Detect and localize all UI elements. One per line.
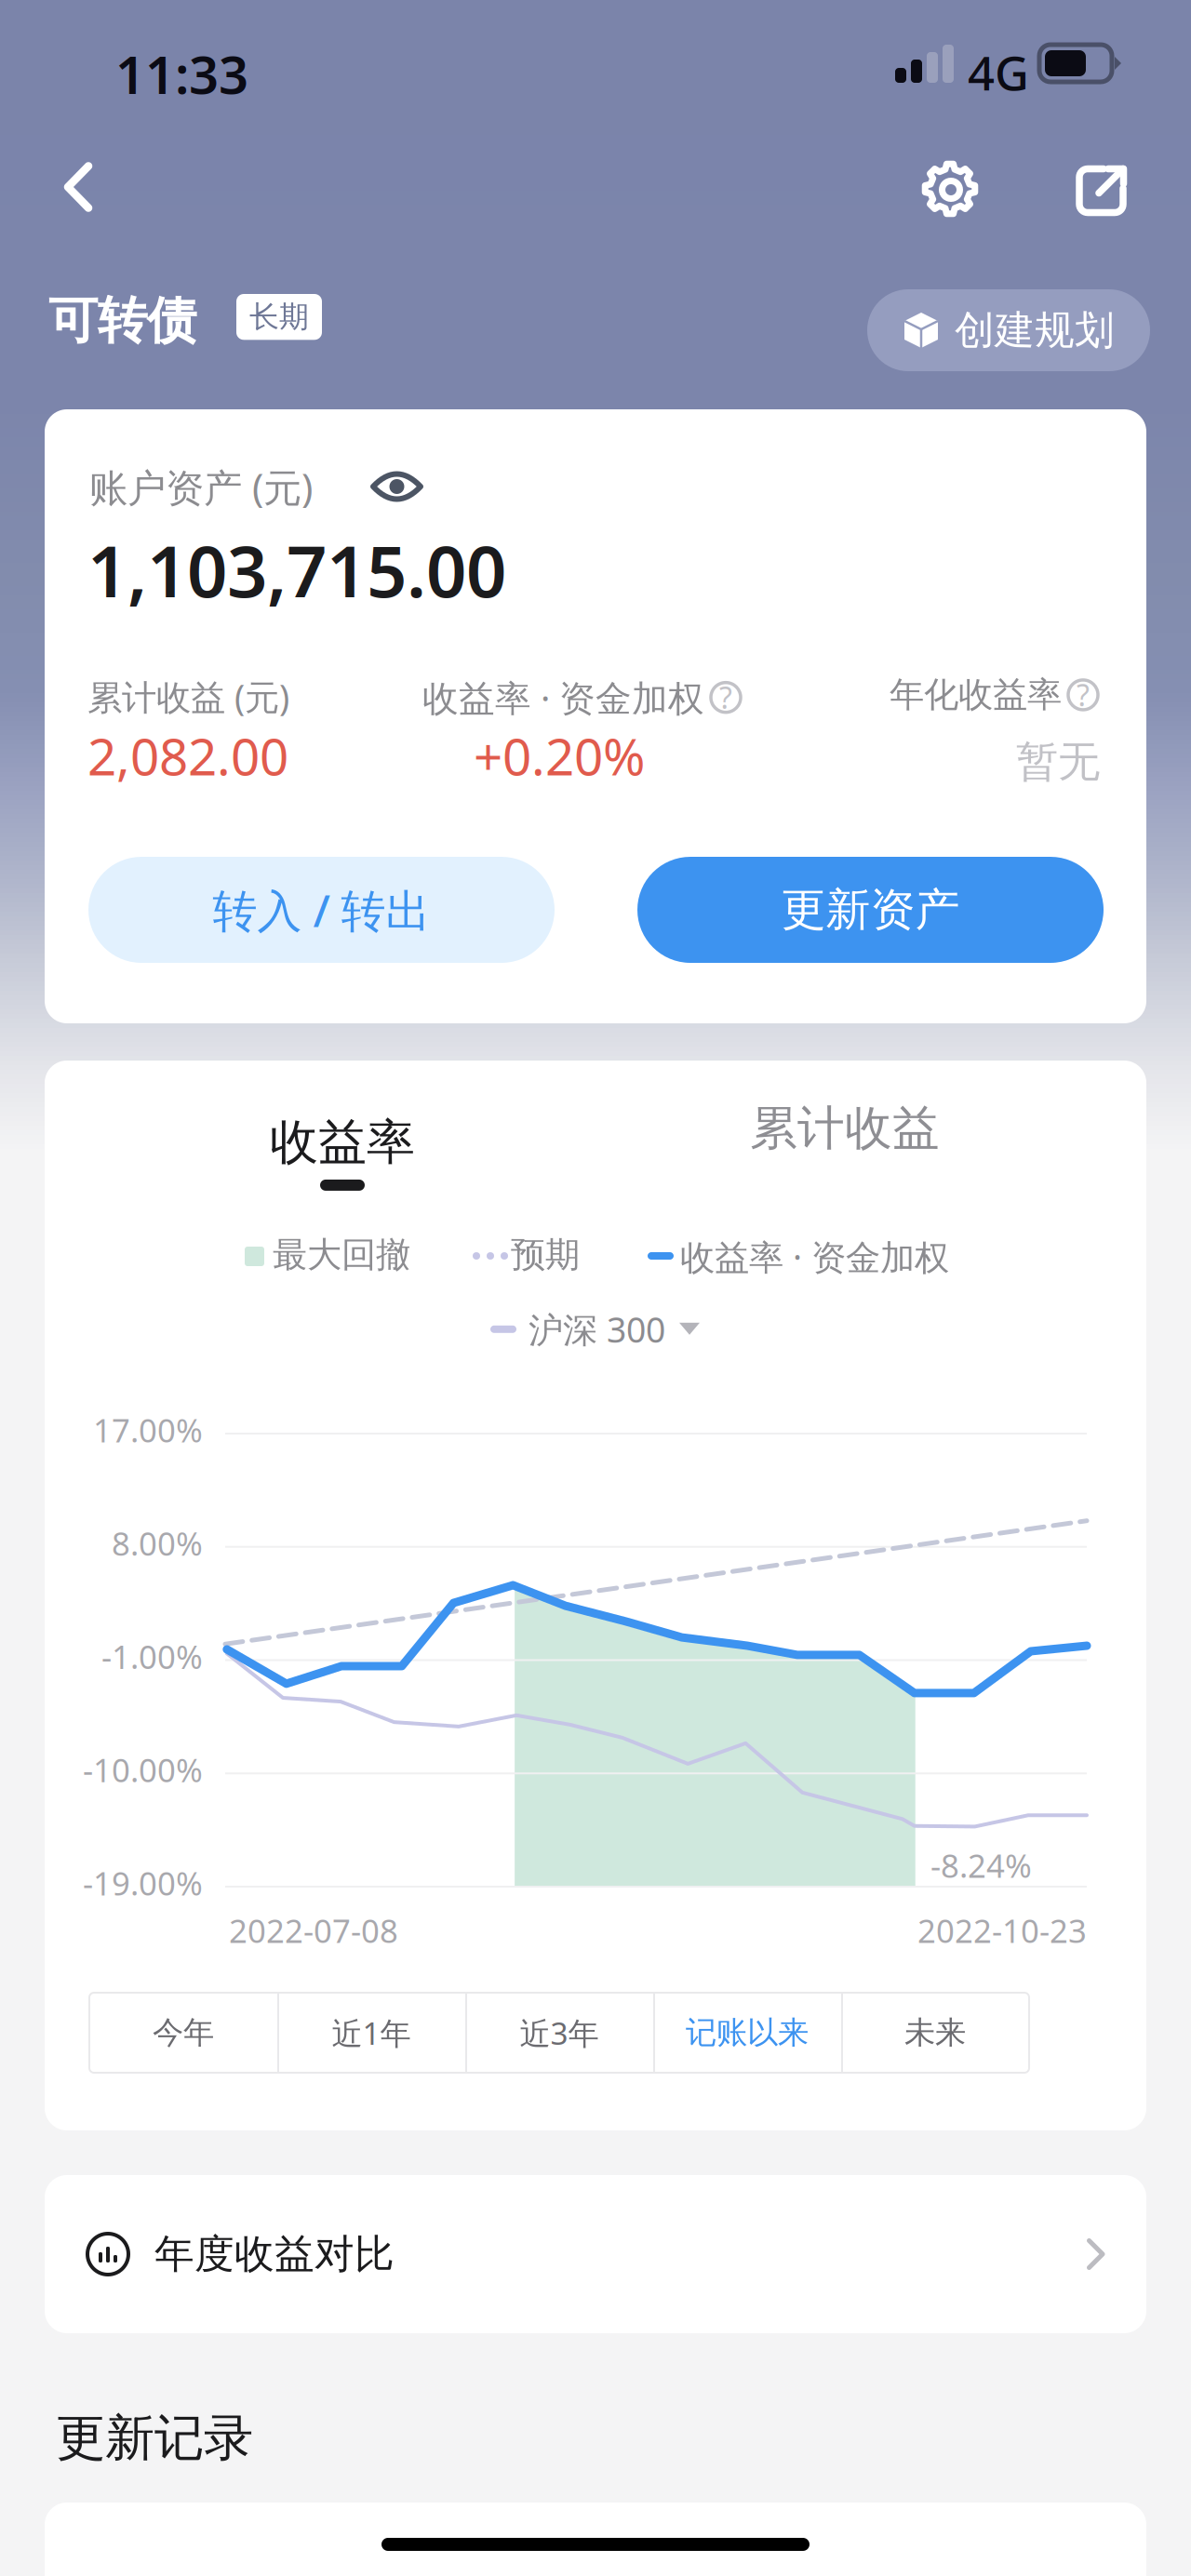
staticText: 2022-07-08 <box>229 1909 398 1952</box>
staticText: 未来 <box>904 2014 966 2052</box>
button[interactable]: 收益率 <box>212 1096 473 1208</box>
staticText: 近1年 <box>332 2012 411 2053</box>
staticText: 可转债 <box>48 290 196 351</box>
button[interactable]: Hide balance <box>367 464 427 509</box>
staticText: 更新资产 <box>781 882 960 937</box>
staticText: 2,082.00 <box>87 722 288 789</box>
button[interactable]: 未来 <box>841 1993 1029 2073</box>
staticText: 1,103,715.00 <box>87 523 506 617</box>
staticText: -1.00% <box>101 1635 203 1678</box>
button[interactable]: Share <box>1062 151 1142 231</box>
button[interactable]: Settings <box>911 150 991 230</box>
staticText: 近3年 <box>520 2012 599 2053</box>
staticText: 年化收益率 <box>890 674 1062 716</box>
staticText: 沪深 300 <box>529 1306 665 1352</box>
staticText: -19.00% <box>83 1862 203 1904</box>
staticText: 转入 / 转出 <box>213 880 430 939</box>
staticText: -10.00% <box>83 1748 203 1791</box>
button[interactable]: 今年 <box>89 1993 277 2073</box>
staticText: 记账以来 <box>686 2014 809 2052</box>
staticText: 预期 <box>511 1234 580 1276</box>
staticText: 最大回撤 <box>273 1234 410 1276</box>
staticText: 年度收益对比 <box>154 2230 395 2278</box>
staticText: 17.00% <box>93 1408 203 1451</box>
staticText: 11:33 <box>115 39 248 108</box>
staticText: 2022-10-23 <box>917 1909 1087 1952</box>
button[interactable]: 近3年 <box>465 1993 653 2073</box>
button[interactable]: 记账以来 <box>653 1993 841 2073</box>
staticText: 长期 <box>249 299 309 335</box>
button[interactable]: 年度收益对比 <box>45 2175 1146 2333</box>
staticText: 账户资产 (元) <box>89 461 313 513</box>
staticText: 暂无 <box>1016 736 1100 788</box>
button[interactable]: 累计收益 <box>715 1096 975 1161</box>
staticText: -8.24% <box>930 1844 1032 1887</box>
staticText: 创建规划 <box>955 306 1115 355</box>
staticText: 收益率 · 资金加权 <box>422 674 704 721</box>
staticText: 8.00% <box>112 1522 203 1565</box>
staticText: 收益率 · 资金加权 <box>680 1234 949 1280</box>
button[interactable]: 创建规划 <box>867 289 1150 371</box>
button[interactable]: 转入 / 转出 <box>88 857 555 963</box>
staticText: 更新记录 <box>56 2408 253 2469</box>
staticText: 收益率 <box>270 1113 415 1172</box>
staticText: 累计收益 (元) <box>87 674 289 720</box>
staticText: +0.20% <box>474 722 645 789</box>
staticText: ? <box>719 678 732 717</box>
button[interactable]: 沪深 300 <box>490 1306 700 1352</box>
staticText: 4G <box>968 41 1029 104</box>
button[interactable]: 近1年 <box>277 1993 465 2073</box>
staticText: 累计收益 <box>750 1100 940 1157</box>
button[interactable]: 更新资产 <box>637 857 1104 963</box>
button[interactable]: Back <box>38 147 118 227</box>
staticText: ? <box>1077 675 1090 715</box>
staticText: 今年 <box>153 2014 214 2052</box>
